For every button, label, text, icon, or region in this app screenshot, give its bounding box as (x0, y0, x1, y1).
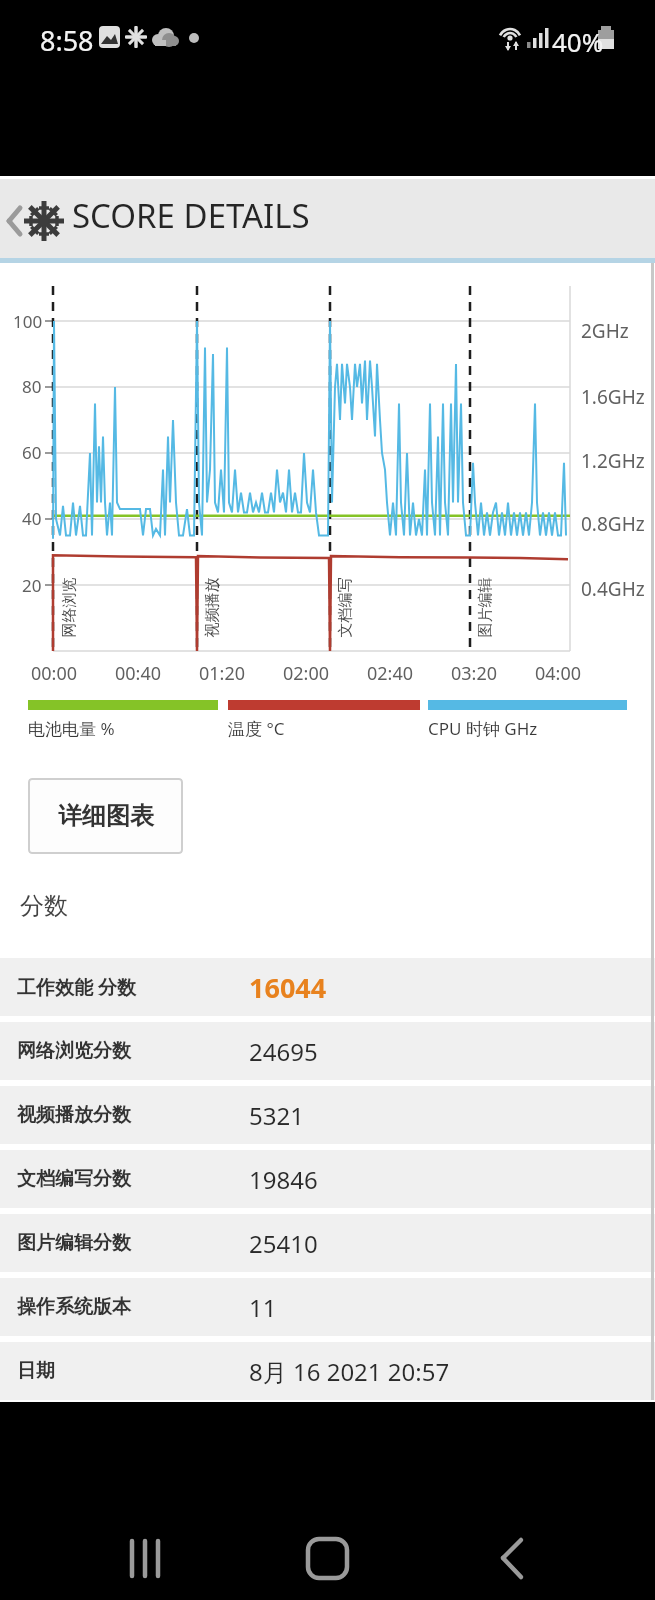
staticText: 03:20 (451, 661, 498, 686)
button[interactable]: 视频播放分数 (0, 1086, 655, 1144)
staticText: 01:20 (199, 661, 246, 686)
button[interactable]: 详细图表 (28, 778, 183, 854)
staticText: 04:00 (535, 661, 582, 686)
button[interactable]: 图片编辑分数 (0, 1214, 655, 1272)
staticText: 文档编写 (335, 577, 354, 637)
staticText: 5321 (249, 1099, 304, 1132)
staticText: 100 (13, 310, 43, 333)
staticText: 02:00 (283, 661, 330, 686)
staticText: 网络浏览 (59, 577, 78, 637)
staticText: 0.4GHz (581, 576, 645, 602)
staticText: 00:40 (115, 661, 162, 686)
staticText: 40 (22, 507, 42, 530)
staticText: 8:58 (40, 22, 94, 59)
staticText: 文档编写分数 (17, 1167, 131, 1191)
staticText: 2GHz (581, 318, 629, 344)
staticText: 1.2GHz (581, 448, 645, 474)
staticText: 00:00 (31, 661, 78, 686)
staticText: 1.6GHz (581, 384, 645, 410)
button[interactable]: 文档编写分数 (0, 1150, 655, 1208)
staticText: 日期 (17, 1359, 55, 1383)
staticText: 视频播放 (202, 577, 221, 637)
staticText: SCORE DETAILS (72, 193, 310, 238)
staticText: 16044 (249, 969, 327, 1006)
staticText: 19846 (249, 1163, 318, 1196)
staticText: 8月 16 2021 20:57 (249, 1355, 450, 1388)
staticText: 工作效能 分数 (17, 974, 136, 1000)
staticText: 电池电量 % (28, 717, 115, 740)
staticText: 80 (22, 375, 42, 398)
staticText: 图片编辑分数 (17, 1231, 131, 1255)
button[interactable]: 日期 (0, 1342, 655, 1400)
staticText: 网络浏览分数 (17, 1039, 131, 1063)
staticText: 操作系统版本 (17, 1295, 131, 1319)
staticText: 温度 °C (228, 717, 285, 740)
staticText: 11 (249, 1291, 277, 1324)
staticText: 分数 (20, 891, 68, 921)
button[interactable]: 网络浏览分数 (0, 1022, 655, 1080)
button[interactable]: 工作效能 分数 (0, 958, 655, 1016)
staticText: 20 (22, 574, 42, 597)
staticText: 0.8GHz (581, 511, 645, 537)
staticText: 40% (552, 24, 604, 59)
button[interactable]: 操作系统版本 (0, 1278, 655, 1336)
staticText: 24695 (249, 1035, 318, 1068)
staticText: 视频播放分数 (17, 1103, 131, 1127)
staticText: 60 (22, 441, 42, 464)
staticText: 详细图表 (58, 801, 154, 831)
staticText: CPU 时钟 GHz (428, 717, 538, 740)
staticText: 02:40 (367, 661, 414, 686)
staticText: 25410 (249, 1227, 318, 1260)
staticText: 图片编辑 (475, 577, 494, 637)
